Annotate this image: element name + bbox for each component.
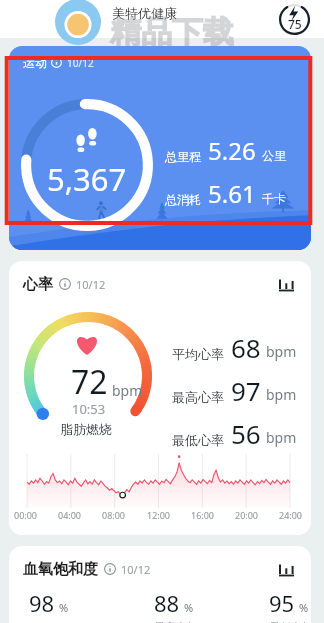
staticText: 12:00 [147,509,171,521]
staticText: 72 [71,360,108,404]
staticText: 56 [231,416,261,451]
staticText: 美特优健康 [112,5,177,21]
staticText: 千卡 [262,191,286,206]
staticText: 最低血氧 [269,620,311,623]
staticText: 5.26 [208,134,256,167]
staticText: bpm [266,428,297,447]
staticText: 95 [269,588,295,618]
staticText: 24:00 [279,509,303,521]
staticText: 98 [29,588,55,618]
staticText: 最高血氧 [154,620,198,623]
staticText: 10/12 [67,56,94,70]
staticText: 脂肪燃烧 [60,421,112,437]
staticText: 血氧饱和度 [23,560,98,579]
staticText: 最高心率 [172,389,224,405]
button[interactable]: History chart [275,273,297,295]
staticText: 心率 [23,275,53,294]
staticText: 00:00 [14,509,38,521]
staticText: % [184,600,194,615]
staticText: 总里程 [165,149,201,164]
staticText: 97 [231,373,261,408]
staticText: 88 [154,588,180,618]
button[interactable]: 血氧饱和度 [9,546,311,623]
staticText: 5.61 [208,177,256,210]
staticText: % [299,600,309,615]
staticText: 75 [288,16,302,32]
staticText: bpm [266,342,297,361]
button[interactable]: 心率 [9,261,311,535]
button[interactable]: Battery 75 percent [279,4,310,35]
staticText: 精品下载 [110,13,234,52]
staticText: bpm [266,385,297,404]
staticText: % [59,600,69,615]
staticText: 10/12 [121,562,151,577]
staticText: 5,367 [47,158,127,200]
staticText: 公里 [262,148,286,163]
staticText: 平均心率 [172,346,224,362]
button[interactable]: 运动 [9,46,311,250]
staticText: 20:00 [235,509,259,521]
staticText: 总消耗 [165,192,201,207]
staticText: 10/12 [76,277,106,292]
staticText: 10:53 [72,400,106,418]
staticText: 08:00 [102,509,126,521]
staticText: bpm [112,381,143,400]
button[interactable]: History chart [275,558,297,580]
staticText: 16:00 [191,509,215,521]
staticText: 运动 [23,55,47,70]
staticText: 04:00 [58,509,82,521]
staticText: 68 [231,330,261,365]
staticText: 最低心率 [172,432,224,448]
